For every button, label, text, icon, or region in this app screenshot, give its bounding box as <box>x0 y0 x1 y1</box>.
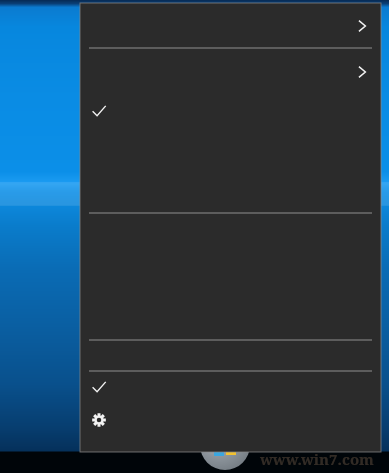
staticText: Win <box>258 420 315 457</box>
button[interactable]: Open submenu <box>350 60 374 84</box>
staticText: www.win7.com <box>260 449 374 469</box>
button[interactable]: Show desktop gadgets <box>80 186 381 213</box>
button[interactable]: Open submenu <box>350 14 374 38</box>
staticText: 7 <box>315 420 331 457</box>
button[interactable]: Auto arrange icons <box>80 94 381 128</box>
button[interactable]: Undo Rename <box>80 310 381 340</box>
button[interactable]: Personalize <box>80 402 381 438</box>
button[interactable]: New <box>80 341 381 371</box>
button[interactable]: Sort by <box>80 3 381 48</box>
button[interactable]: Screen resolution <box>80 372 381 402</box>
button[interactable]: Group by <box>80 49 381 94</box>
